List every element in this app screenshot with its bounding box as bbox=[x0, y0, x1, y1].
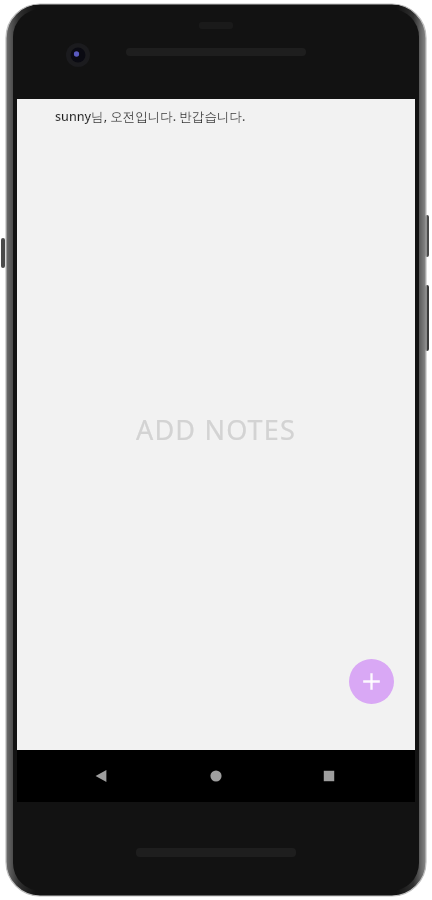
button[interactable]: Back bbox=[83, 758, 119, 794]
button[interactable]: ADD NOTES bbox=[17, 411, 415, 448]
staticText: sunny님, 오전입니다. 반갑습니다. bbox=[55, 108, 246, 125]
button[interactable]: Recent apps bbox=[311, 758, 347, 794]
staticText: ADD NOTES bbox=[17, 411, 415, 448]
button[interactable]: Home bbox=[198, 758, 234, 794]
button[interactable]: Add note bbox=[349, 659, 394, 704]
